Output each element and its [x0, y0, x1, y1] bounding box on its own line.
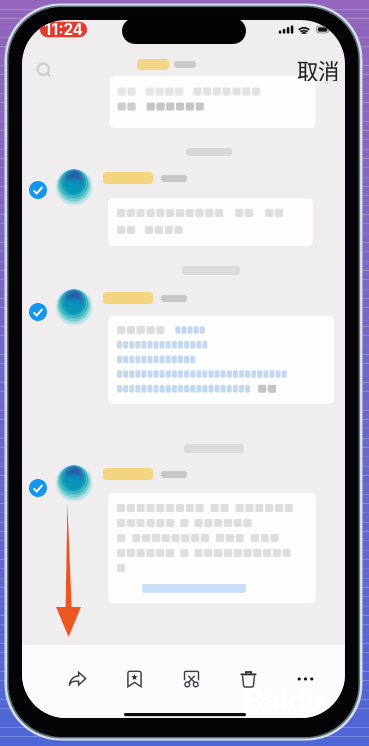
staticText: Baidu	[244, 682, 324, 717]
button[interactable]: Delete	[228, 659, 268, 699]
button[interactable]: Search	[33, 59, 55, 81]
button[interactable]: Forward	[57, 659, 97, 699]
staticText: 11:24	[44, 20, 82, 39]
staticText: 取消	[297, 55, 339, 85]
staticText: jingyan.baidu.com	[244, 720, 369, 738]
button[interactable]: More	[285, 659, 325, 699]
button[interactable]: Favorite	[114, 659, 154, 699]
button[interactable]: 取消	[297, 58, 339, 82]
button[interactable]: Merge forward	[171, 659, 211, 699]
